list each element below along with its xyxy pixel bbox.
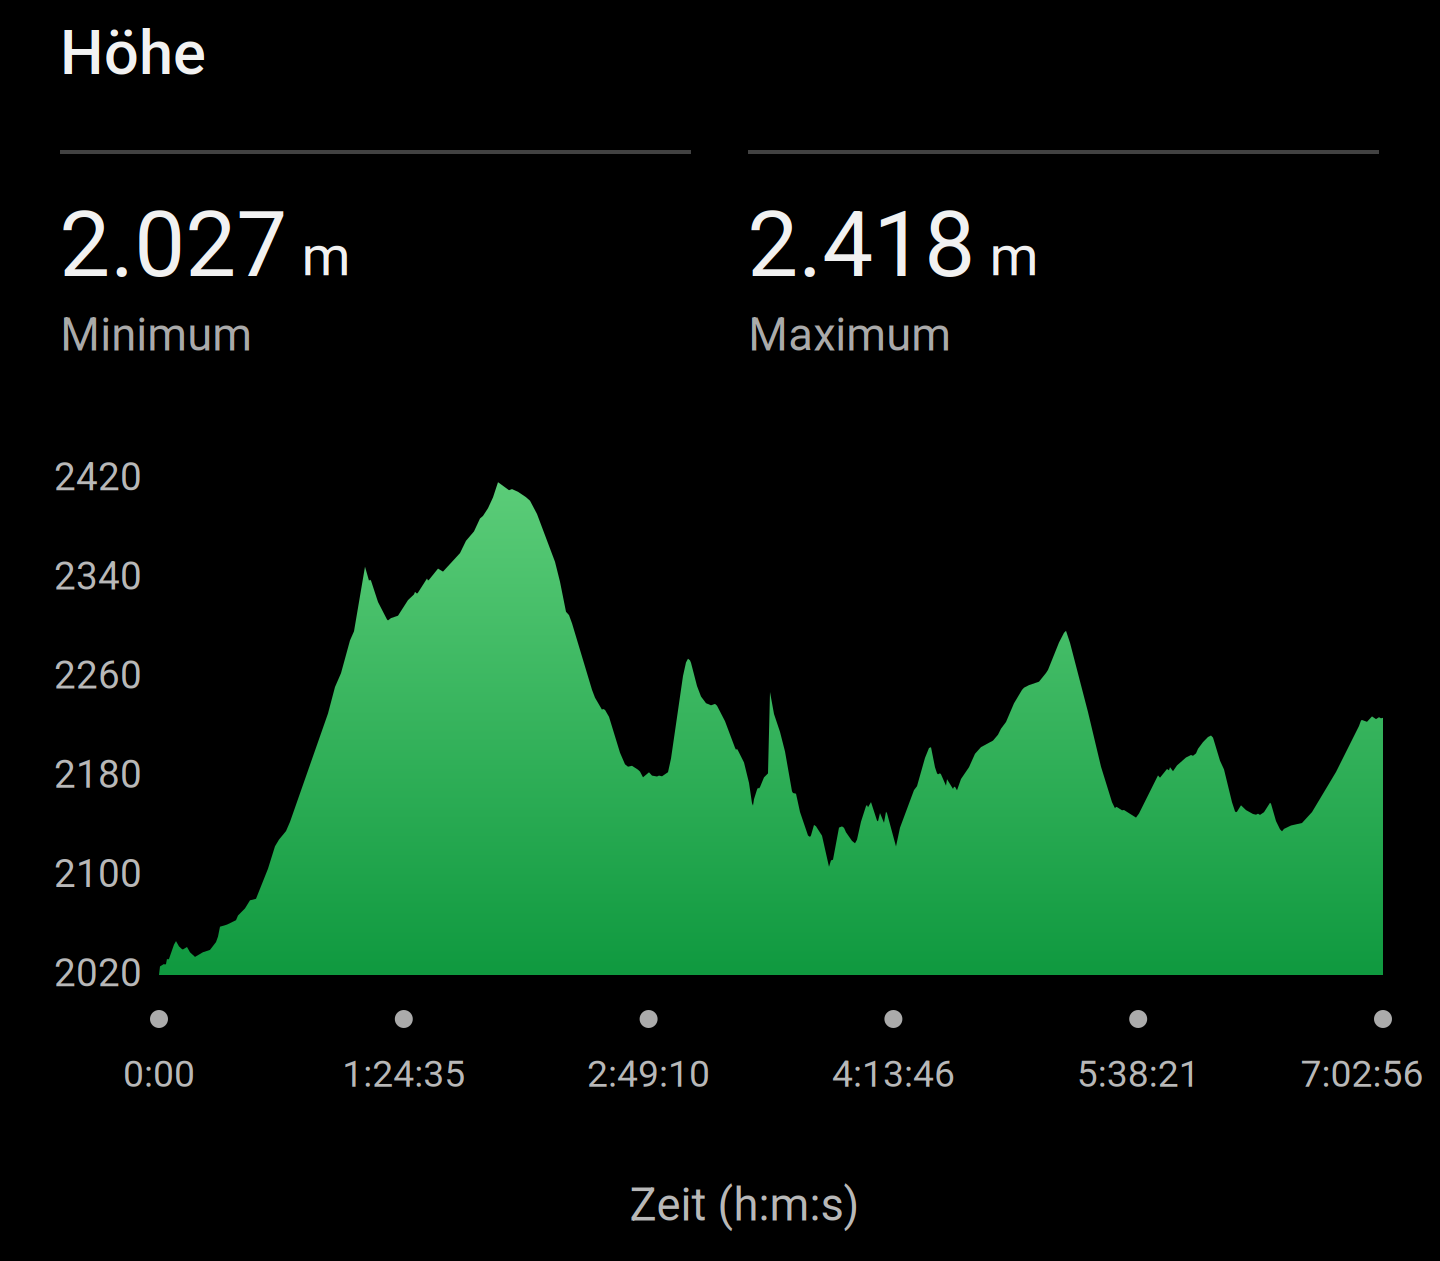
staticText: Zeit (h:m:s): [629, 1178, 859, 1231]
staticText: 1:24:35: [342, 1052, 465, 1096]
staticText: Maximum: [748, 308, 951, 361]
staticText: m: [989, 223, 1038, 289]
staticText: Minimum: [60, 308, 252, 361]
staticText: Höhe: [60, 17, 206, 89]
staticText: 5:38:21: [1077, 1052, 1200, 1096]
button[interactable]: 2.418: [0, 0, 631, 230]
button[interactable]: 2.027: [0, 0, 631, 230]
staticText: 2100: [54, 851, 142, 896]
staticText: 4:13:46: [832, 1052, 955, 1096]
staticText: 0:00: [123, 1052, 195, 1096]
staticText: 2420: [54, 454, 142, 500]
staticText: 2.027: [59, 192, 287, 298]
staticText: 2020: [54, 950, 142, 996]
staticText: 2180: [54, 752, 142, 797]
staticText: 2340: [54, 553, 142, 599]
staticText: m: [301, 223, 350, 289]
staticText: 2.418: [747, 192, 975, 298]
staticText: 2260: [54, 653, 142, 698]
staticText: 2:49:10: [587, 1052, 710, 1096]
staticText: 7:02:56: [1300, 1052, 1423, 1096]
